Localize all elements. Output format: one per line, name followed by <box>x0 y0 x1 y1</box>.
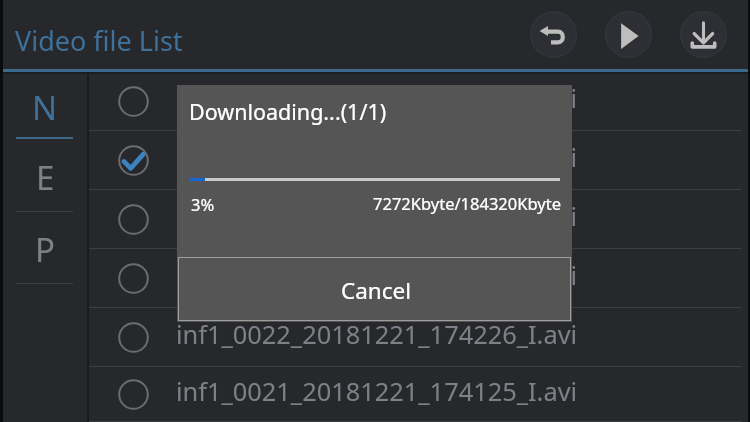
button[interactable]: inf1_0021_20181221_174125_I.avi <box>89 367 741 422</box>
staticText: inf1_0024_20181221_174426_I.avi <box>176 199 578 234</box>
staticText: N <box>32 85 58 130</box>
staticText: Downloading...(1/1) <box>189 97 387 126</box>
staticText: 3% <box>191 193 215 215</box>
button[interactable]: Cancel <box>177 257 572 322</box>
staticText: 7272Kbyte/184320Kbyte <box>373 192 561 214</box>
button[interactable]: inf1_0025_20181221_174526_I.avi <box>89 131 741 190</box>
staticText: Video file List <box>15 22 183 59</box>
staticText: inf1_0023_20181221_174326_I.avi <box>176 258 578 293</box>
staticText: inf1_0026_20181221_174626_I.avi <box>176 81 578 116</box>
staticText: E <box>36 155 55 200</box>
button[interactable]: Download <box>680 11 727 58</box>
button[interactable]: N <box>3 72 87 139</box>
staticText: inf1_0021_20181221_174125_I.avi <box>176 374 578 409</box>
button[interactable]: inf1_0022_20181221_174226_I.avi <box>89 308 741 367</box>
button[interactable]: inf1_0026_20181221_174626_I.avi <box>89 72 741 131</box>
staticText: inf1_0025_20181221_174526_I.avi <box>176 140 578 175</box>
staticText: inf1_0022_20181221_174226_I.avi <box>176 317 578 352</box>
staticText: P <box>35 227 55 272</box>
button[interactable]: Play <box>605 11 652 58</box>
button[interactable]: inf1_0024_20181221_174426_I.avi <box>89 190 741 249</box>
button[interactable]: inf1_0023_20181221_174326_I.avi <box>89 249 741 308</box>
staticText: Cancel <box>341 275 412 306</box>
button[interactable]: E <box>3 139 87 212</box>
button[interactable]: P <box>3 211 87 284</box>
button[interactable]: Undo <box>530 11 577 58</box>
